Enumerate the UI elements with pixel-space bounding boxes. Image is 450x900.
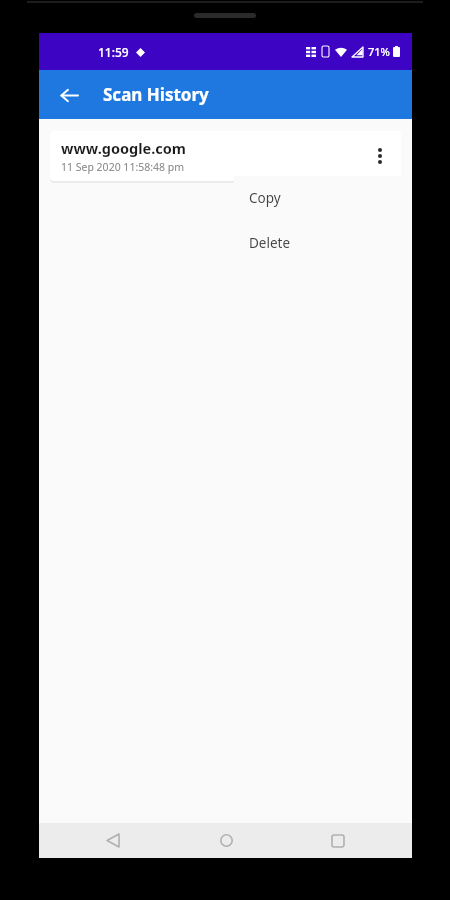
staticText: 71%	[368, 44, 390, 59]
button[interactable]: Copy	[234, 176, 412, 220]
staticText: Copy	[249, 189, 281, 207]
button[interactable]: Delete	[234, 220, 412, 265]
staticText: Scan History	[103, 83, 209, 106]
staticText: 11 Sep 2020 11:58:48 pm	[61, 160, 185, 174]
button[interactable]: More options	[367, 136, 393, 176]
staticText: 11:59	[98, 44, 129, 60]
button[interactable]: www.google.com	[50, 131, 401, 181]
button[interactable]: Back	[95, 823, 131, 858]
button[interactable]: Recent apps	[320, 823, 356, 858]
staticText: www.google.com	[61, 138, 186, 158]
staticText: Delete	[249, 234, 291, 252]
button[interactable]: Home	[208, 823, 244, 858]
button[interactable]: Back	[52, 78, 86, 112]
